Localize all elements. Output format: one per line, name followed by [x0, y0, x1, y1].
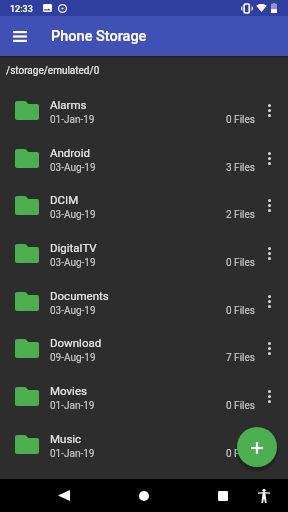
- staticText: Movies: [50, 384, 87, 397]
- button[interactable]: More options: [255, 181, 288, 229]
- staticText: 03-Aug-19: [50, 257, 96, 269]
- button[interactable]: Open navigation menu: [4, 16, 36, 56]
- button[interactable]: Movies: [0, 372, 288, 420]
- staticText: 09-Aug-19: [50, 352, 96, 364]
- button[interactable]: More options: [255, 86, 288, 134]
- button[interactable]: Home: [124, 479, 164, 512]
- button[interactable]: Accessibility: [248, 479, 280, 512]
- staticText: 12:33: [10, 4, 33, 15]
- staticText: Download: [50, 336, 102, 349]
- button[interactable]: Add new folder: [237, 427, 277, 467]
- button[interactable]: DigitalTV: [0, 229, 288, 277]
- staticText: 7 Files: [226, 352, 255, 364]
- staticText: 3 Files: [226, 162, 255, 174]
- button[interactable]: Documents: [0, 277, 288, 325]
- staticText: 03-Aug-19: [50, 162, 96, 174]
- staticText: Documents: [50, 289, 109, 302]
- button[interactable]: More options: [255, 229, 288, 277]
- staticText: 0 Files: [226, 305, 255, 317]
- button[interactable]: Music: [0, 420, 288, 468]
- staticText: DigitalTV: [50, 241, 97, 254]
- staticText: Android: [50, 146, 90, 159]
- button[interactable]: More options: [255, 372, 288, 420]
- staticText: 01-Jan-19: [50, 448, 95, 460]
- button[interactable]: Android: [0, 134, 288, 182]
- staticText: 2 Files: [226, 209, 255, 221]
- button[interactable]: DCIM: [0, 181, 288, 229]
- staticText: 0 Files: [226, 448, 255, 460]
- staticText: Music: [50, 432, 82, 445]
- staticText: Alarms: [50, 98, 87, 111]
- staticText: 0 Files: [226, 114, 255, 126]
- staticText: 03-Aug-19: [50, 209, 96, 221]
- button[interactable]: More options: [255, 277, 288, 325]
- button[interactable]: Back: [44, 479, 84, 512]
- staticText: 03-Aug-19: [50, 305, 96, 317]
- staticText: Phone Storage: [51, 28, 147, 45]
- button[interactable]: Recent apps: [203, 479, 243, 512]
- button[interactable]: Download: [0, 324, 288, 372]
- staticText: /storage/emulated/0: [6, 65, 100, 77]
- button[interactable]: More options: [255, 134, 288, 182]
- staticText: 01-Jan-19: [50, 114, 95, 126]
- staticText: 0 Files: [226, 400, 255, 412]
- button[interactable]: More options: [255, 324, 288, 372]
- staticText: 0 Files: [226, 257, 255, 269]
- button[interactable]: More options: [255, 420, 288, 468]
- staticText: 01-Jan-19: [50, 400, 95, 412]
- button[interactable]: Alarms: [0, 86, 288, 134]
- staticText: DCIM: [50, 193, 79, 206]
